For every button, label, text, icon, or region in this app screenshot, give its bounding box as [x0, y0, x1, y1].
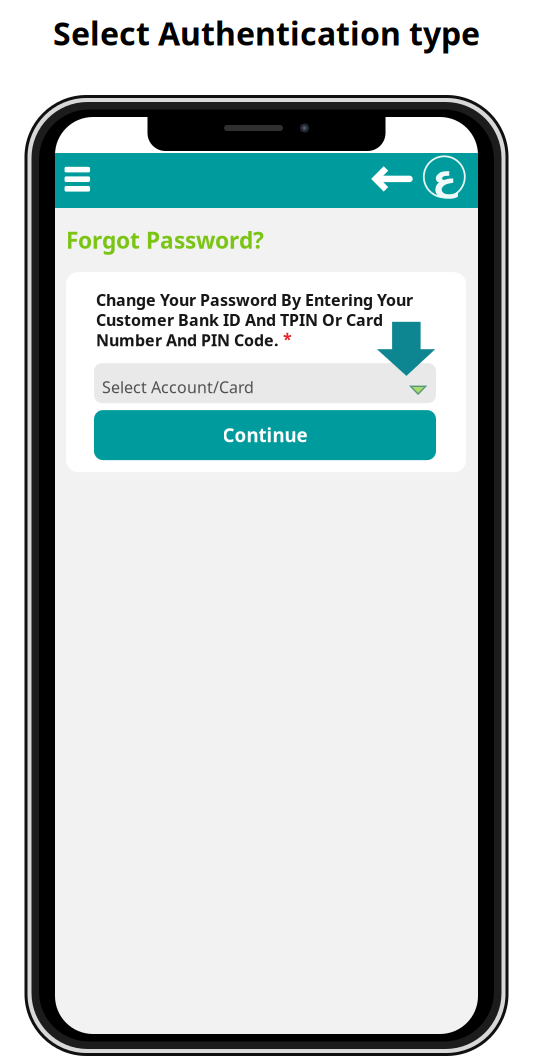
button[interactable]: Back — [366, 156, 419, 202]
button[interactable]: Select Account/Card — [94, 363, 436, 403]
button[interactable]: Menu — [55, 158, 99, 200]
button[interactable]: Switch to Arabic — [418, 150, 471, 203]
staticText: Forgot Password? — [66, 225, 264, 255]
staticText: ع — [432, 157, 457, 198]
staticText: * — [283, 328, 292, 349]
staticText: Select Account/Card — [102, 376, 254, 398]
staticText: Continue — [222, 423, 307, 447]
staticText: Change Your Password By Entering Your Cu… — [96, 289, 413, 351]
staticText: Select Authentication type — [53, 12, 480, 54]
button[interactable]: Continue — [94, 410, 436, 460]
